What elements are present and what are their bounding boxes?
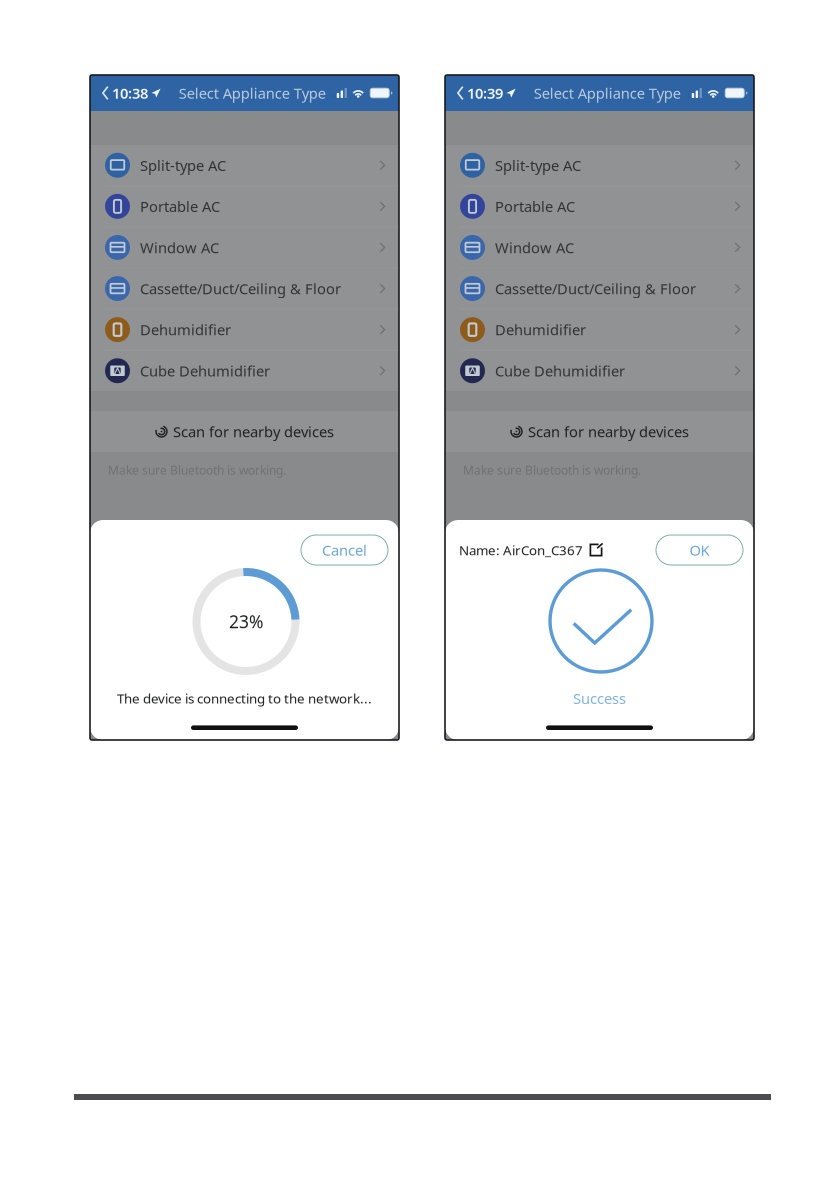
button[interactable]: Window AC [445, 227, 754, 268]
staticText: Portable AC [495, 197, 575, 216]
button[interactable]: Dehumidifier [90, 309, 399, 350]
button[interactable]: Window AC [90, 227, 399, 268]
staticText: Select Appliance Type [179, 83, 326, 103]
button[interactable]: Scan for nearby devices [445, 411, 754, 452]
button[interactable]: Portable AC [90, 186, 399, 227]
staticText: Window AC [495, 238, 574, 257]
staticText: Success [573, 689, 626, 708]
button[interactable]: Cassette/Duct/Ceiling & Floor [445, 268, 754, 309]
staticText: Cancel [322, 540, 367, 560]
button[interactable]: Portable AC [445, 186, 754, 227]
button[interactable]: Back [90, 83, 148, 103]
staticText: Name: AirCon_C367 [459, 541, 583, 559]
button[interactable]: Dehumidifier [445, 309, 754, 350]
button[interactable]: Cube Dehumidifier [445, 350, 754, 391]
button[interactable]: Split-type AC [90, 145, 399, 185]
staticText: Cassette/Duct/Ceiling & Floor [495, 279, 696, 298]
staticText: The device is connecting to the network.… [117, 689, 372, 707]
staticText: Scan for nearby devices [528, 422, 689, 441]
button[interactable]: Scan for nearby devices [90, 411, 399, 452]
staticText: Cassette/Duct/Ceiling & Floor [140, 279, 341, 298]
button[interactable]: Cube Dehumidifier [90, 350, 399, 391]
button[interactable]: Split-type AC [445, 145, 754, 185]
staticText: Split-type AC [495, 155, 581, 175]
staticText: OK [689, 540, 709, 560]
staticText: Make sure Bluetooth is working. [108, 462, 286, 478]
staticText: Select Appliance Type [534, 83, 681, 103]
button[interactable]: Cassette/Duct/Ceiling & Floor [90, 268, 399, 309]
staticText: Make sure Bluetooth is working. [463, 462, 641, 478]
button[interactable]: Rename device [583, 543, 603, 557]
staticText: Dehumidifier [140, 320, 231, 339]
button[interactable]: Back [445, 83, 503, 103]
staticText: Split-type AC [140, 155, 226, 175]
staticText: 10:39 [467, 83, 503, 103]
button[interactable]: OK [656, 535, 743, 565]
staticText: Window AC [140, 238, 219, 257]
staticText: Cube Dehumidifier [140, 361, 270, 380]
staticText: Cube Dehumidifier [495, 361, 625, 380]
staticText: Portable AC [140, 197, 220, 216]
staticText: Dehumidifier [495, 320, 586, 339]
button[interactable]: Cancel [301, 535, 388, 565]
staticText: 23% [229, 610, 263, 633]
staticText: 10:38 [112, 83, 148, 103]
staticText: Scan for nearby devices [173, 422, 334, 441]
